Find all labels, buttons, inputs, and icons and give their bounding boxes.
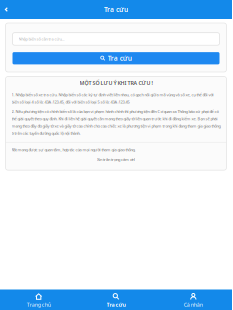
staticText: Tra cứu: [104, 5, 128, 14]
staticText: Tra cứu: [106, 301, 125, 308]
button[interactable]: Tra cứu: [12, 52, 219, 64]
staticText: Tra cứu: [108, 54, 132, 63]
button[interactable]: Back: [0, 3, 13, 16]
button[interactable]: Tra cứu: [77, 288, 155, 310]
button[interactable]: Trang chủ: [0, 288, 77, 310]
staticText: Trang chủ: [27, 301, 51, 308]
staticText: Rất mong được sự quan tâm, hợp tác của m…: [11, 147, 135, 152]
staticText: 1. Nhập biển số xe tra cứu. Nhập biển số…: [11, 92, 213, 105]
staticText: Nhập biển số cần tra cứu...: [18, 36, 64, 42]
staticText: 2. Nếu phương tiện có chính biển số là c…: [11, 109, 220, 136]
staticText: Xin trân trọng cảm ơn!: [97, 157, 135, 162]
staticText: Cá nhân: [184, 301, 203, 308]
staticText: MỘT SỐ LƯU Ý KHI TRA CỨU !: [79, 79, 152, 87]
button[interactable]: Cá nhân: [155, 288, 232, 310]
